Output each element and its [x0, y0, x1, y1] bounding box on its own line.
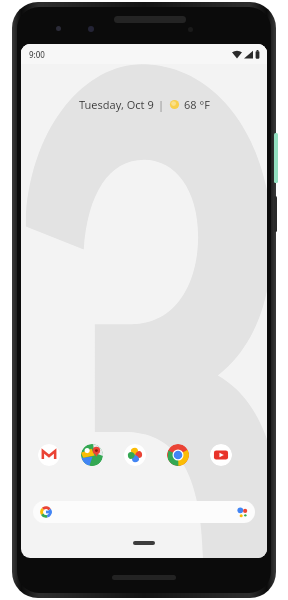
- staticText: |: [158, 97, 165, 112]
- button[interactable]: Photos: [124, 444, 146, 466]
- button[interactable]: Search: [33, 501, 255, 523]
- staticText: 9:00: [29, 49, 45, 60]
- button[interactable]: Maps: [81, 444, 103, 466]
- staticText: Tuesday, Oct 9: [79, 97, 154, 112]
- button[interactable]: Gmail: [38, 444, 60, 466]
- button[interactable]: Tuesday, Oct 9: [75, 95, 214, 114]
- staticText: 68 °F: [184, 97, 210, 112]
- button[interactable]: YouTube: [210, 444, 232, 466]
- button[interactable]: Home: [133, 541, 155, 545]
- button[interactable]: Chrome: [167, 444, 189, 466]
